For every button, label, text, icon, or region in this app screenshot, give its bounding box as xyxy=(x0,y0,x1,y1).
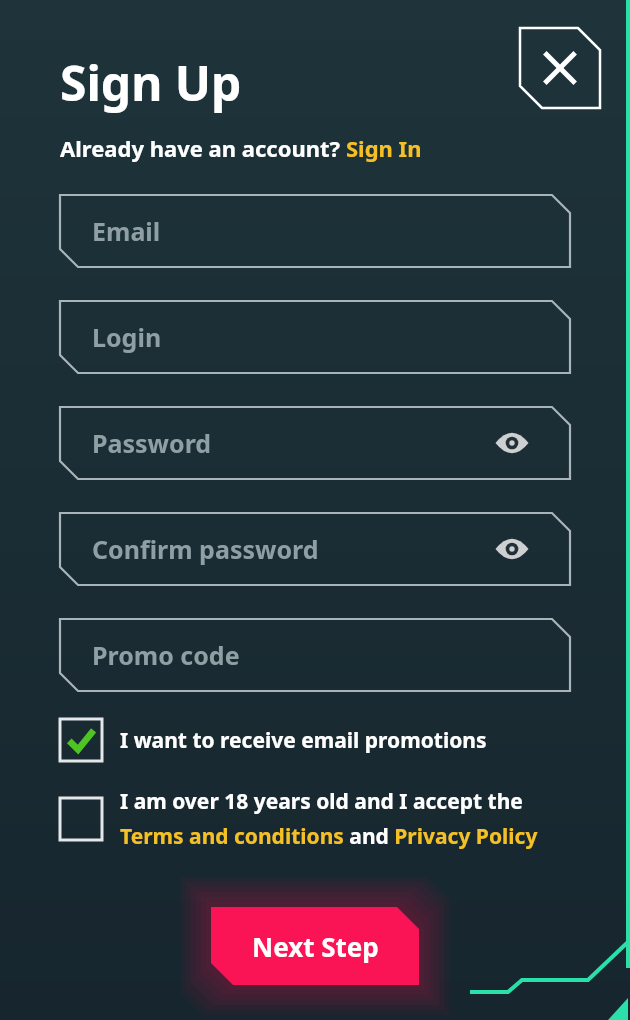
button[interactable]: Show password xyxy=(492,423,532,463)
staticText: Terms and conditions and Privacy Policy xyxy=(120,822,538,851)
button[interactable]: Next Step xyxy=(211,907,419,985)
staticText: Promo code xyxy=(92,638,240,672)
staticText: Password xyxy=(92,426,212,460)
staticText: Next Step xyxy=(252,929,379,964)
staticText: Email xyxy=(92,214,161,248)
button[interactable]: Receive email promotions xyxy=(60,719,570,761)
staticText: Sign Up xyxy=(60,50,242,115)
staticText: Confirm password xyxy=(92,532,319,566)
staticText: I am over 18 years old and I accept the xyxy=(120,787,523,816)
button[interactable]: Terms and conditions and Privacy Policy xyxy=(120,822,538,851)
button[interactable]: Show password xyxy=(492,529,532,569)
button[interactable]: Sign In xyxy=(346,133,422,163)
staticText: I want to receive email promotions xyxy=(120,726,487,755)
button[interactable]: Accept terms xyxy=(60,798,102,840)
button[interactable]: Promo code xyxy=(60,619,570,691)
button[interactable]: Confirm password xyxy=(60,513,570,585)
button[interactable]: Receive email promotions xyxy=(60,719,102,761)
staticText: Already have an account? xyxy=(60,133,346,163)
button[interactable]: Password xyxy=(60,407,570,479)
button[interactable]: Login xyxy=(60,301,570,373)
staticText: Sign In xyxy=(346,133,422,163)
button[interactable]: Close xyxy=(520,28,600,108)
button[interactable]: Email xyxy=(60,195,570,267)
staticText: Login xyxy=(92,320,162,354)
